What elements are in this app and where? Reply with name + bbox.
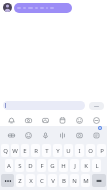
button[interactable]: A [5, 159, 13, 172]
staticText: A [7, 162, 11, 170]
button[interactable]: F [37, 159, 46, 172]
staticText: C [40, 177, 44, 185]
staticText: P [100, 147, 104, 155]
button[interactable]: P [97, 144, 106, 157]
button[interactable]: Q [1, 144, 9, 157]
button[interactable]: Contact avatar [3, 3, 12, 12]
button[interactable]: M [81, 174, 90, 187]
staticText: L [95, 162, 99, 170]
button[interactable]: V [48, 174, 57, 187]
staticText: X [29, 177, 33, 185]
button[interactable]: I [75, 144, 84, 157]
staticText: B [62, 177, 66, 185]
button[interactable]: Handwriting [56, 129, 68, 141]
button[interactable]: Stickers [22, 129, 34, 141]
staticText: N [72, 177, 77, 185]
button[interactable]: B [59, 174, 68, 187]
button[interactable]: New [98, 126, 102, 130]
staticText: F [40, 162, 44, 170]
button[interactable]: Voice clip [5, 114, 17, 126]
button[interactable]: Clipboard [90, 129, 102, 141]
staticText: T [45, 147, 49, 155]
button[interactable]: N [70, 174, 79, 187]
button[interactable]: Settings [73, 129, 85, 141]
staticText: I [78, 147, 81, 155]
button[interactable]: D [26, 159, 35, 172]
button[interactable]: X [26, 174, 35, 187]
staticText: Y [56, 147, 60, 155]
staticText: O [88, 147, 93, 155]
button[interactable]: Backspace [92, 174, 106, 187]
button[interactable] [14, 3, 72, 13]
button[interactable]: U [64, 144, 73, 157]
staticText: W [12, 147, 18, 155]
button[interactable]: G [48, 159, 57, 172]
button[interactable]: Emoji [73, 114, 85, 126]
button[interactable]: Calendar [56, 114, 68, 126]
button[interactable]: Gallery [39, 114, 51, 126]
staticText: D [28, 162, 33, 170]
staticText: S [18, 162, 22, 170]
button[interactable]: Camera [22, 114, 34, 126]
button[interactable]: H [59, 159, 68, 172]
button[interactable]: W [11, 144, 19, 157]
button[interactable]: R [31, 144, 40, 157]
button[interactable]: Send [89, 102, 104, 110]
staticText: K [84, 162, 88, 170]
staticText: H [61, 162, 66, 170]
staticText: Z [18, 177, 22, 185]
button[interactable]: Message input [3, 101, 85, 110]
button[interactable]: L [92, 159, 101, 172]
button[interactable]: T [42, 144, 51, 157]
staticText: V [51, 177, 55, 185]
staticText: Q [3, 147, 8, 155]
button[interactable]: O [86, 144, 95, 157]
staticText: E [23, 147, 27, 155]
button[interactable]: K [81, 159, 90, 172]
button[interactable]: Y [53, 144, 62, 157]
button[interactable]: J [70, 159, 79, 172]
button[interactable]: S [15, 159, 24, 172]
staticText: M [83, 177, 89, 185]
button[interactable]: Keyboard modes [5, 129, 17, 141]
button[interactable]: More options [90, 114, 102, 126]
staticText: R [34, 147, 38, 155]
button[interactable]: Symbols [1, 174, 14, 187]
button[interactable]: C [37, 174, 46, 187]
button[interactable]: E [21, 144, 29, 157]
staticText: U [66, 147, 71, 155]
button[interactable]: Z [16, 174, 24, 187]
staticText: J [74, 162, 76, 170]
staticText: G [50, 162, 55, 170]
button[interactable]: Voice input [39, 129, 51, 141]
